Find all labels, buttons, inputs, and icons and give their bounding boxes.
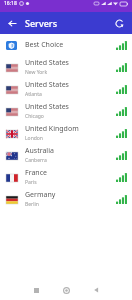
button[interactable]: Australia	[0, 144, 132, 166]
staticText: 16:18	[4, 0, 17, 7]
staticText: United States	[25, 102, 69, 112]
button[interactable]: France	[0, 166, 132, 188]
button[interactable]: United States	[0, 100, 132, 122]
staticText: United States	[25, 80, 69, 90]
staticText: Germany	[25, 190, 56, 200]
staticText: Berlin	[25, 201, 39, 208]
staticText: Atlanta	[25, 91, 42, 98]
staticText: Servers	[25, 17, 58, 29]
staticText: Canberra	[25, 157, 47, 164]
staticText: Paris	[25, 179, 37, 186]
staticText: United Kingdom	[25, 124, 79, 134]
button[interactable]: United States	[0, 78, 132, 100]
staticText: United States	[25, 58, 69, 68]
button[interactable]: Back	[4, 15, 20, 31]
staticText: France	[25, 168, 47, 178]
staticText: Best Choice	[25, 40, 64, 50]
staticText: Chicago	[25, 113, 44, 120]
staticText: London	[25, 135, 43, 142]
button[interactable]: Refresh	[111, 15, 127, 31]
button[interactable]: Home	[55, 280, 77, 300]
button[interactable]: United States	[0, 56, 132, 78]
button[interactable]: Best Choice	[0, 34, 132, 56]
button[interactable]: Back	[85, 280, 107, 300]
staticText: New York	[25, 69, 48, 76]
staticText: Australia	[25, 146, 54, 156]
button[interactable]: Germany	[0, 188, 132, 210]
button[interactable]: Recents	[25, 280, 47, 300]
button[interactable]: United Kingdom	[0, 122, 132, 144]
